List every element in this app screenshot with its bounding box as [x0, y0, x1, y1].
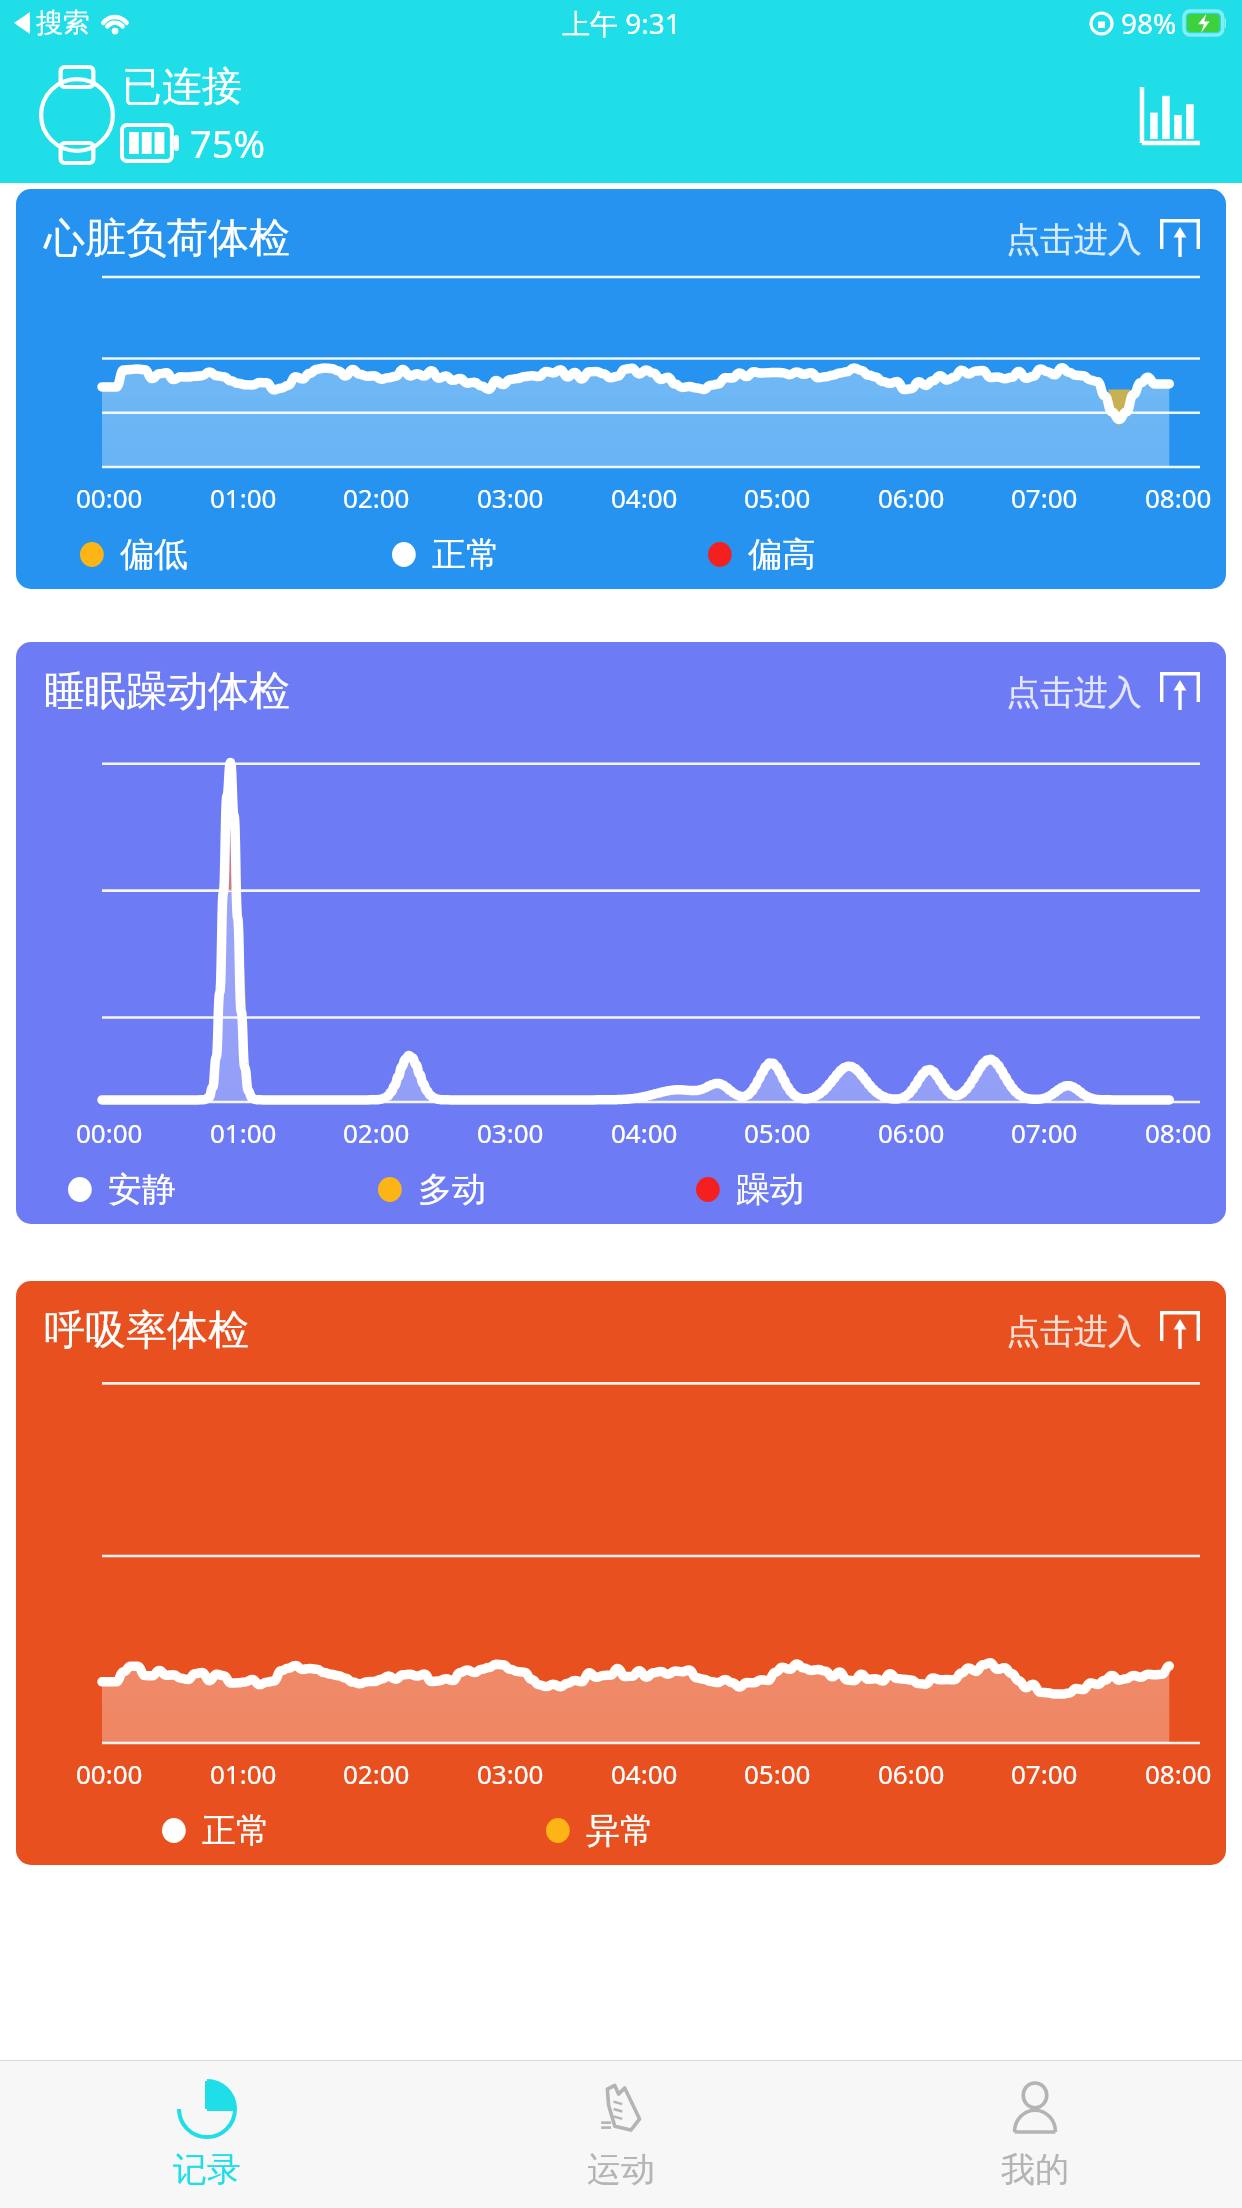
staticText: 05:00 — [744, 1756, 811, 1791]
staticText: 多动 — [418, 1168, 486, 1211]
button[interactable]: 多动 — [378, 1168, 486, 1211]
staticText: 04:00 — [611, 1115, 678, 1150]
button[interactable]: 呼吸率体检 — [16, 1281, 1226, 1865]
staticText: 75% — [190, 117, 266, 169]
staticText: 正常 — [202, 1809, 270, 1852]
staticText: 异常 — [586, 1809, 654, 1852]
button[interactable]: 我的 — [828, 2061, 1242, 2208]
staticText: 躁动 — [736, 1168, 804, 1211]
staticText: 心脏负荷体检 — [44, 213, 290, 265]
staticText: 已连接 — [122, 61, 242, 111]
staticText: 08:00 — [1145, 1756, 1212, 1791]
button[interactable]: 运动 — [414, 2061, 828, 2208]
staticText: 安静 — [108, 1168, 176, 1211]
button[interactable]: 睡眠躁动体检 — [16, 642, 1226, 1224]
staticText: 记录 — [173, 2148, 241, 2191]
staticText: 08:00 — [1145, 1115, 1212, 1150]
staticText: 呼吸率体检 — [44, 1305, 249, 1357]
button[interactable]: 异常 — [546, 1809, 654, 1852]
staticText: 03:00 — [477, 1115, 544, 1150]
button[interactable]: 偏低 — [80, 533, 188, 576]
staticText: 06:00 — [878, 1756, 945, 1791]
staticText: 01:00 — [210, 1115, 277, 1150]
staticText: 00:00 — [76, 1115, 143, 1150]
staticText: 点击进入 — [1006, 218, 1142, 261]
button[interactable]: 安静 — [68, 1168, 176, 1211]
staticText: 02:00 — [343, 480, 410, 515]
staticText: 偏低 — [120, 533, 188, 576]
button[interactable]: 正常 — [162, 1809, 270, 1852]
staticText: 00:00 — [76, 1756, 143, 1791]
staticText: 98% — [1121, 4, 1177, 42]
staticText: 01:00 — [210, 1756, 277, 1791]
staticText: 04:00 — [611, 1756, 678, 1791]
staticText: 点击进入 — [1006, 671, 1142, 714]
staticText: 07:00 — [1011, 1756, 1078, 1791]
staticText: 偏高 — [748, 533, 816, 576]
staticText: 点击进入 — [1006, 1310, 1142, 1353]
button[interactable]: 躁动 — [696, 1168, 804, 1211]
staticText: 上午 9:31 — [562, 4, 681, 42]
other: 进入 呼吸率体检 — [1160, 1311, 1200, 1351]
staticText: 02:00 — [343, 1115, 410, 1150]
staticText: 05:00 — [744, 480, 811, 515]
staticText: 正常 — [432, 533, 500, 576]
staticText: 05:00 — [744, 1115, 811, 1150]
other: 进入 睡眠躁动体检 — [1160, 672, 1200, 712]
button[interactable]: 偏高 — [708, 533, 816, 576]
staticText: 07:00 — [1011, 1115, 1078, 1150]
staticText: 搜索 — [36, 6, 90, 40]
staticText: 00:00 — [76, 480, 143, 515]
button[interactable]: 统计 — [1140, 85, 1200, 145]
staticText: 02:00 — [343, 1756, 410, 1791]
staticText: 03:00 — [477, 480, 544, 515]
staticText: 我的 — [1001, 2148, 1069, 2191]
button[interactable]: 记录 — [0, 2061, 414, 2208]
button[interactable]: 心脏负荷体检 — [16, 189, 1226, 589]
staticText: 08:00 — [1145, 480, 1212, 515]
other: 进入 心脏负荷体检 — [1160, 219, 1200, 259]
staticText: 03:00 — [477, 1756, 544, 1791]
staticText: 运动 — [587, 2148, 655, 2191]
staticText: 04:00 — [611, 480, 678, 515]
staticText: 睡眠躁动体检 — [44, 666, 290, 718]
staticText: 07:00 — [1011, 480, 1078, 515]
button[interactable]: 正常 — [392, 533, 500, 576]
staticText: 06:00 — [878, 480, 945, 515]
staticText: 06:00 — [878, 1115, 945, 1150]
staticText: 01:00 — [210, 480, 277, 515]
